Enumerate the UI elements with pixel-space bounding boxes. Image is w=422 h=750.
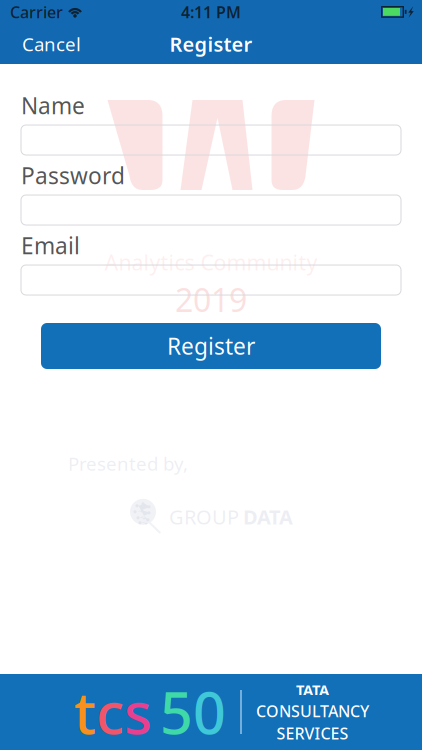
staticText: Cancel <box>22 32 81 56</box>
staticText: DATA <box>243 503 293 530</box>
button[interactable] <box>21 265 401 295</box>
staticText: SERVICES <box>276 723 348 744</box>
staticText: Password <box>21 160 125 190</box>
staticText: s <box>124 674 152 750</box>
staticText: Name <box>21 90 85 120</box>
staticText: t <box>74 674 96 750</box>
staticText: c <box>96 674 124 750</box>
button[interactable] <box>21 125 401 155</box>
staticText: CONSULTANCY <box>256 700 369 722</box>
button[interactable]: Cancel <box>16 26 87 62</box>
staticText: 5 <box>160 674 193 750</box>
staticText: 4:11 PM <box>181 1 241 23</box>
staticText: TATA <box>296 680 329 699</box>
staticText: GROUP <box>169 503 239 530</box>
staticText: 0 <box>193 674 226 750</box>
staticText: Email <box>21 230 80 260</box>
staticText: Register <box>169 31 252 57</box>
staticText: Presented by, <box>68 451 188 476</box>
staticText: 2019 <box>175 278 247 321</box>
button[interactable]: Register <box>41 323 381 369</box>
staticText: Register <box>167 331 255 361</box>
staticText: Carrier <box>10 1 63 23</box>
staticText: Analytics Community <box>104 248 317 276</box>
button[interactable] <box>21 195 401 225</box>
